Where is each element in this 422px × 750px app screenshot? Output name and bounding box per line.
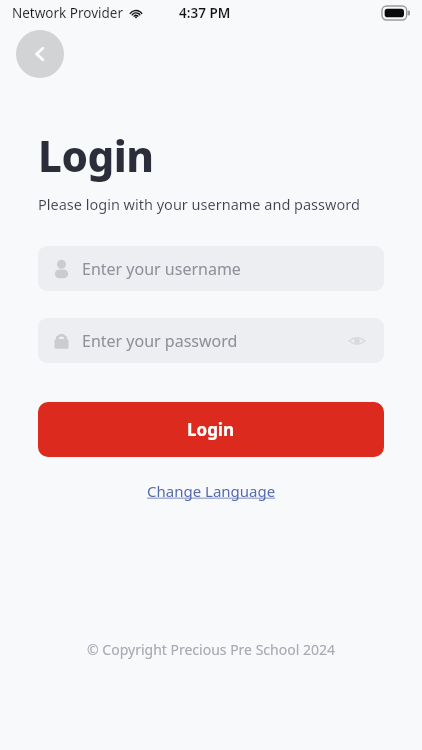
button[interactable]: Login — [38, 402, 384, 457]
staticText: 4:37 PM — [179, 4, 231, 22]
staticText: Login — [38, 127, 154, 184]
staticText: Network Provider — [12, 4, 124, 22]
button[interactable]: Show password — [344, 328, 370, 354]
staticText: Login — [187, 418, 235, 441]
button[interactable]: Enter your password — [38, 318, 384, 363]
button[interactable]: Change Language — [141, 478, 282, 504]
staticText: Enter your username — [82, 258, 241, 280]
staticText: © Copyright Precious Pre School 2024 — [0, 640, 422, 659]
staticText: Please login with your username and pass… — [38, 194, 360, 214]
button[interactable]: Back — [16, 30, 64, 78]
staticText: Enter your password — [82, 330, 344, 352]
button[interactable]: Enter your username — [38, 246, 384, 291]
staticText: Change Language — [147, 481, 276, 501]
